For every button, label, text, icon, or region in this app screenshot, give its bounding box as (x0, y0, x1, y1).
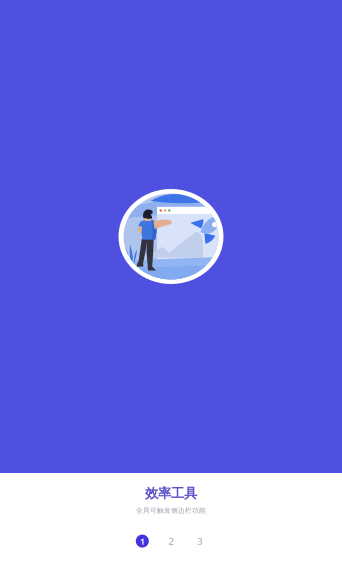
staticText: 3 (197, 535, 202, 547)
staticText: 2 (168, 535, 173, 547)
button[interactable]: 2 (164, 535, 177, 548)
staticText: 1 (140, 535, 145, 547)
staticText: 全局可触发侧边栏功能 (136, 506, 206, 515)
staticText: 效率工具 (145, 485, 197, 501)
button[interactable]: 1 (136, 535, 149, 548)
button[interactable]: 3 (193, 535, 206, 548)
